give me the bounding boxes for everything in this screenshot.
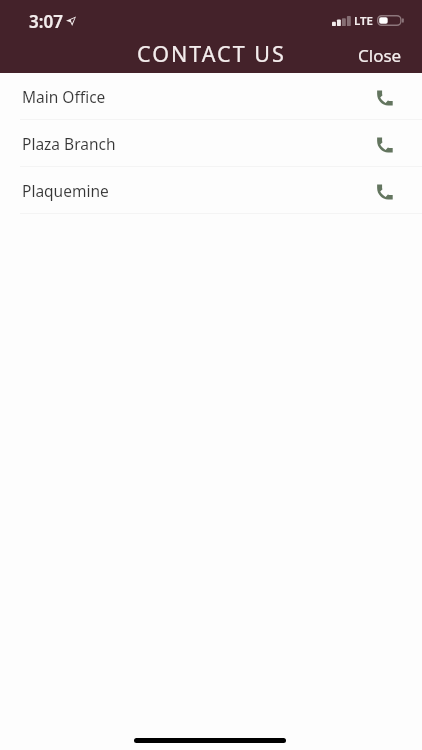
button[interactable]: Plaza Branch bbox=[0, 120, 422, 166]
staticText: Close bbox=[358, 44, 402, 67]
button[interactable]: Call Plaquemine bbox=[363, 170, 403, 210]
button[interactable]: Close bbox=[346, 38, 414, 73]
staticText: Main Office bbox=[22, 86, 106, 107]
staticText: Plaza Branch bbox=[22, 133, 116, 154]
button[interactable]: Main Office bbox=[0, 73, 422, 119]
staticText: LTE bbox=[354, 13, 374, 29]
button[interactable]: Plaquemine bbox=[0, 167, 422, 213]
button[interactable]: Call Plaza Branch bbox=[363, 123, 403, 163]
staticText: CONTACT US bbox=[137, 39, 286, 68]
staticText: Plaquemine bbox=[22, 180, 109, 201]
button[interactable]: Call Main Office bbox=[363, 76, 403, 116]
staticText: 3:07 bbox=[29, 10, 63, 33]
